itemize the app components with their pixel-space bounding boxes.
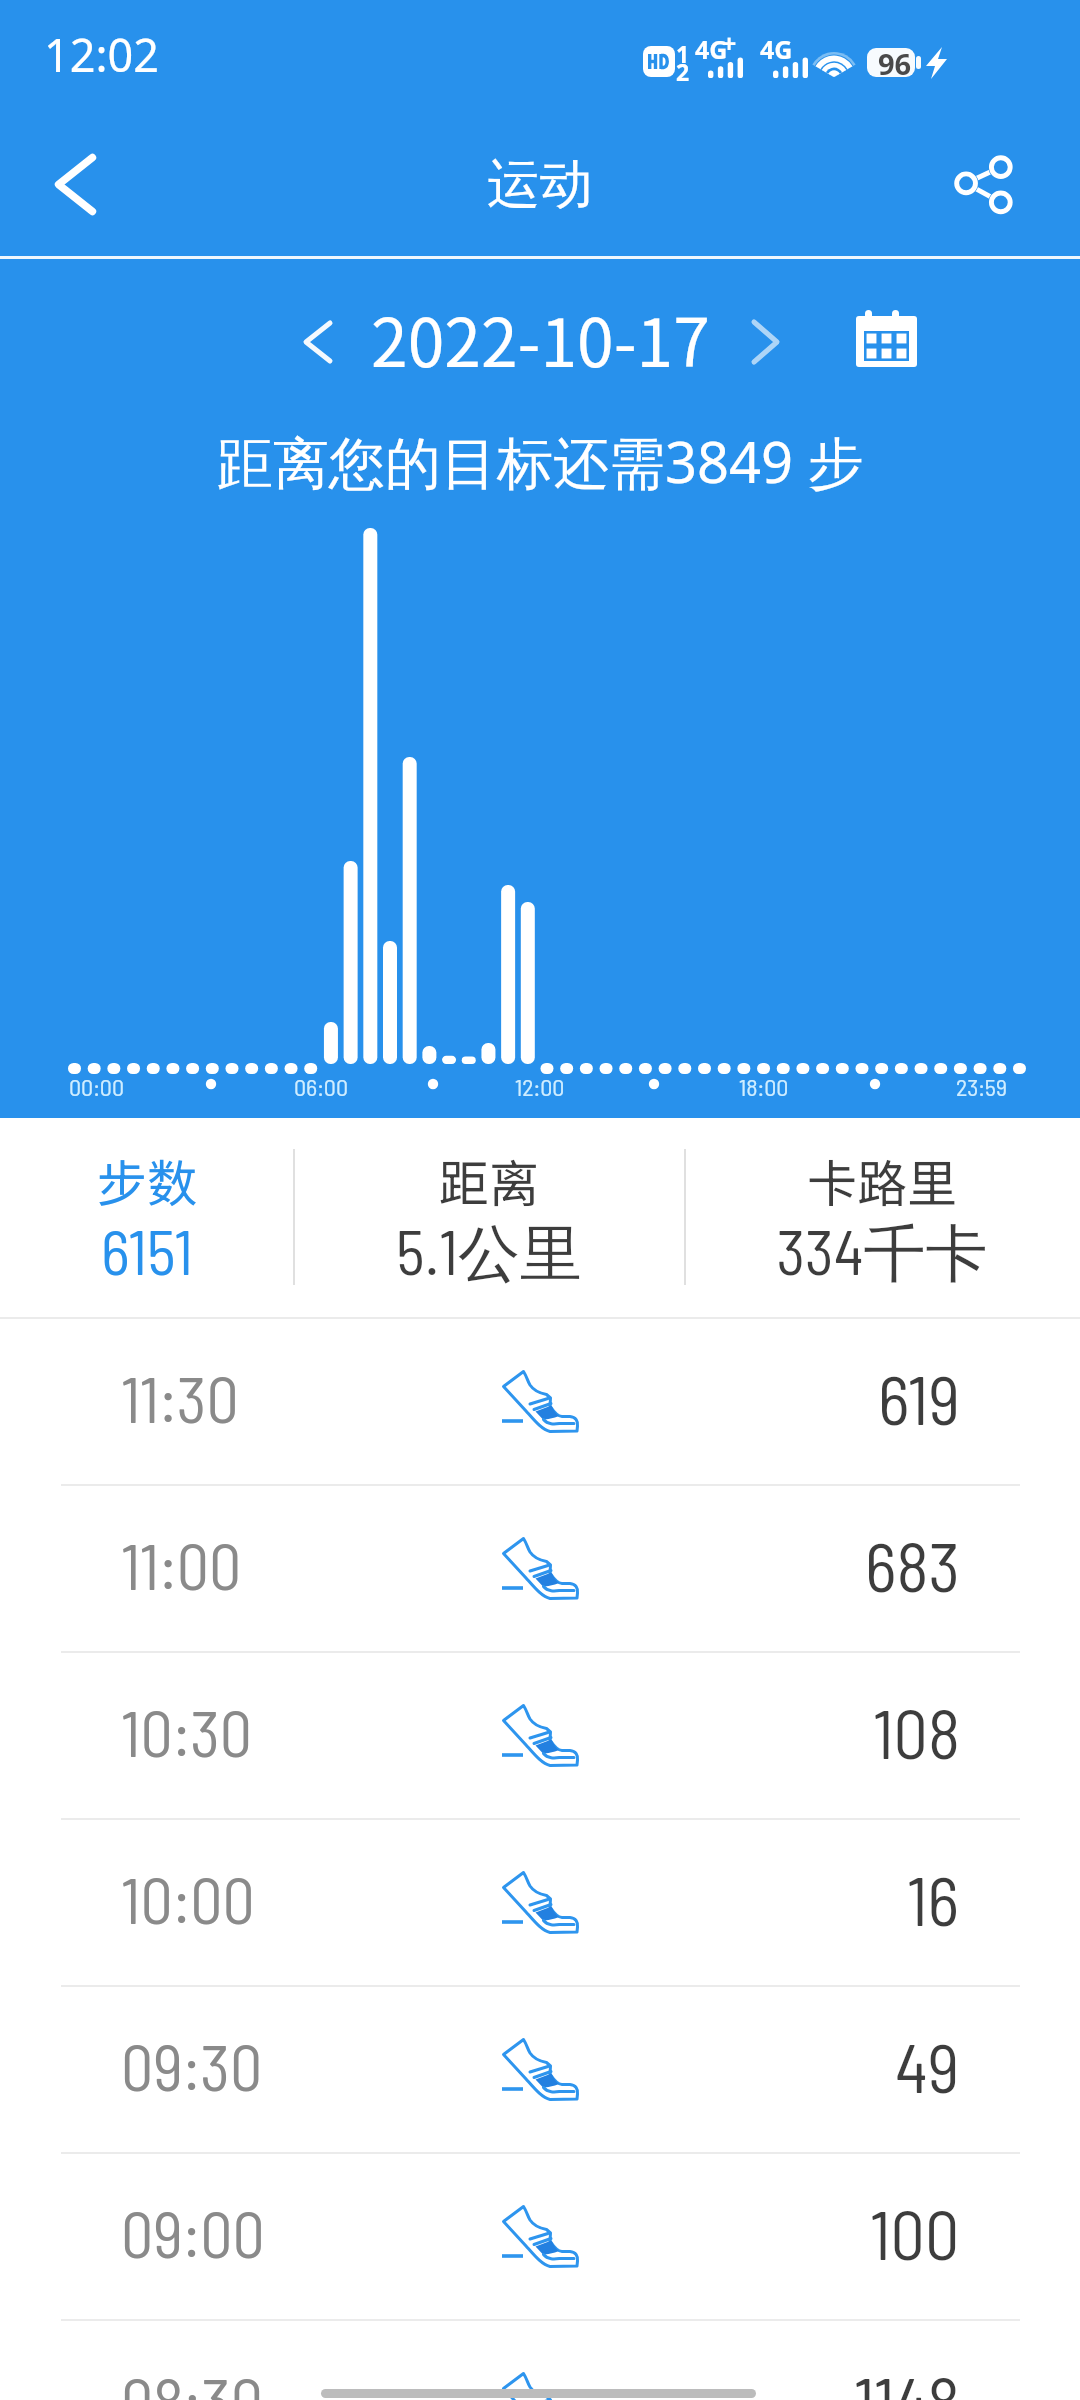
staticText: 16 <box>907 1858 960 1940</box>
staticText: 09:00 <box>121 2194 265 2271</box>
staticText: 12:00 <box>515 1072 565 1101</box>
staticText: 00:00 <box>69 1072 124 1101</box>
staticText: 18:00 <box>739 1072 789 1101</box>
staticText: 23:59 <box>956 1072 1007 1101</box>
staticText: 49 <box>895 2025 960 2107</box>
staticText: 619 <box>878 1357 960 1439</box>
button[interactable]: 10:30 <box>0 1653 1080 1818</box>
staticText: 10:00 <box>121 1860 255 1937</box>
staticText: 11:30 <box>121 1359 239 1436</box>
staticText: 96 <box>878 44 912 83</box>
staticText: 卡路里 <box>807 1144 957 1216</box>
staticText: 108 <box>873 1691 960 1773</box>
staticText: 运动 <box>487 151 593 218</box>
staticText: 6151 <box>101 1213 193 1287</box>
staticText: 4G <box>695 32 728 66</box>
staticText: + <box>722 26 737 60</box>
button[interactable]: 卡路里 <box>684 1118 1080 1317</box>
staticText: 12:02 <box>44 24 160 85</box>
staticText: 06:00 <box>294 1072 348 1101</box>
staticText: 距离您的目标还需3849 步 <box>217 423 864 499</box>
button[interactable]: 09:00 <box>0 2154 1080 2319</box>
staticText: 100 <box>870 2192 960 2274</box>
button[interactable]: Calendar <box>836 283 936 393</box>
button[interactable]: 08:30 <box>0 2321 1080 2400</box>
button[interactable]: 步数 <box>0 1118 293 1317</box>
staticText: 1148 <box>854 2359 960 2400</box>
staticText: 09:30 <box>121 2027 263 2104</box>
staticText: 5.1公里 <box>396 1213 582 1293</box>
button[interactable]: 11:00 <box>0 1486 1080 1651</box>
staticText: 距离 <box>439 1144 539 1216</box>
staticText: 步数 <box>97 1144 197 1216</box>
button[interactable]: Share <box>919 112 1049 257</box>
staticText: 683 <box>865 1524 960 1606</box>
button[interactable]: 09:30 <box>0 1987 1080 2152</box>
button[interactable]: Next day <box>735 287 795 397</box>
button[interactable]: 11:30 <box>0 1319 1080 1484</box>
button[interactable]: 10:00 <box>0 1820 1080 1985</box>
staticText: 10:30 <box>121 1693 253 1770</box>
staticText: 4G <box>760 32 793 66</box>
staticText: 1 <box>676 38 690 69</box>
button[interactable]: 距离 <box>293 1118 684 1317</box>
staticText: 11:00 <box>121 1526 242 1603</box>
staticText: 2022-10-17 <box>371 290 710 386</box>
button[interactable]: Previous day <box>288 287 348 397</box>
button[interactable]: Back <box>0 112 150 257</box>
staticText: 08:30 <box>121 2361 263 2400</box>
staticText: 334千卡 <box>776 1213 988 1293</box>
staticText: 2 <box>676 56 690 87</box>
